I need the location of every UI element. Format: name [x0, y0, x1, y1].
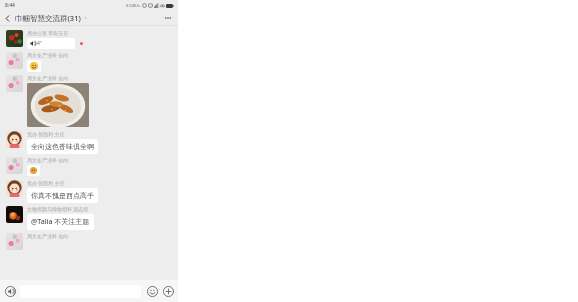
staticText: 巾帼智慧交流群(31): [15, 13, 81, 23]
staticText: 你真不愧是西点高手: [31, 191, 94, 200]
staticText: 局文化产业科 全向: [27, 75, 69, 82]
staticText: 党办 张凯利 主任: [27, 131, 65, 138]
staticText: 局文化产业科 全向: [27, 52, 69, 59]
button[interactable]: [27, 60, 41, 72]
button[interactable]: Emoji: [146, 285, 158, 297]
staticText: @Talia 不关注主题: [31, 217, 90, 227]
button[interactable]: 全向这色香味俱全啊: [27, 139, 98, 154]
button[interactable]: @Talia 不关注主题: [27, 214, 94, 230]
button[interactable]: [27, 83, 89, 127]
button[interactable]: [27, 165, 40, 176]
staticText: 局文化产业科 全向: [27, 157, 69, 164]
staticText: 局文化产业科 全向: [27, 233, 69, 240]
button[interactable]: More functions: [162, 285, 174, 297]
staticText: 文物资源与博物馆科 温志坦: [27, 206, 89, 213]
button[interactable]: Back: [0, 11, 14, 25]
button[interactable]: Voice input: [4, 285, 16, 297]
button[interactable]: 4": [27, 38, 75, 49]
staticText: 8:44: [5, 2, 15, 9]
button[interactable]: More options: [162, 12, 174, 24]
button[interactable]: 你真不愧是西点高手: [27, 188, 98, 203]
staticText: 局办公室 李彩玉任: [27, 30, 69, 37]
staticText: 0.04K/s: [126, 3, 140, 8]
staticText: 党办 张凯利 主任: [27, 180, 65, 187]
staticText: 4": [37, 40, 42, 47]
staticText: 全向这色香味俱全啊: [31, 142, 94, 151]
